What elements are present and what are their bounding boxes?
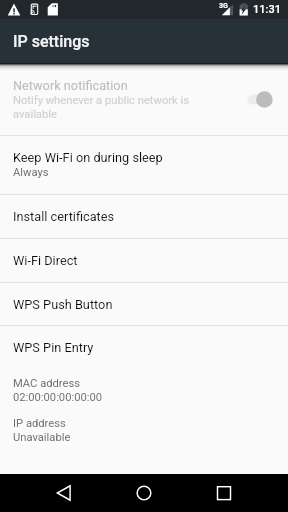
- staticText: WPS Push Button: [13, 298, 113, 312]
- button[interactable]: Home: [124, 474, 164, 512]
- staticText: MAC address: [13, 376, 81, 390]
- staticText: Wi-Fi Direct: [13, 254, 78, 268]
- staticText: Notify whenever a public network is avai…: [13, 93, 199, 121]
- button[interactable]: WPS Pin Entry: [0, 326, 288, 369]
- staticText: 11:31: [253, 3, 281, 16]
- staticText: Network notification: [13, 79, 128, 93]
- staticText: 3G: [219, 2, 228, 10]
- staticText: Keep Wi-Fi on during sleep: [13, 151, 163, 165]
- staticText: IP address: [13, 416, 66, 430]
- button[interactable]: MAC address: [0, 372, 288, 412]
- button[interactable]: Keep Wi-Fi on during sleep: [0, 136, 288, 194]
- button[interactable]: Recent apps: [204, 474, 244, 512]
- staticText: Install certificates: [13, 210, 115, 224]
- button[interactable]: IP address: [0, 412, 288, 452]
- button[interactable]: Install certificates: [0, 195, 288, 238]
- staticText: WPS Pin Entry: [13, 341, 94, 355]
- staticText: Unavailable: [13, 430, 71, 444]
- button[interactable]: WPS Push Button: [0, 283, 288, 326]
- staticText: Always: [13, 165, 49, 179]
- button[interactable]: Back: [44, 474, 84, 512]
- staticText: IP settings: [13, 32, 90, 51]
- button[interactable]: Wi-Fi Direct: [0, 239, 288, 282]
- staticText: 02:00:00:00:00:00: [13, 390, 102, 404]
- button[interactable]: Network notification: [0, 69, 288, 135]
